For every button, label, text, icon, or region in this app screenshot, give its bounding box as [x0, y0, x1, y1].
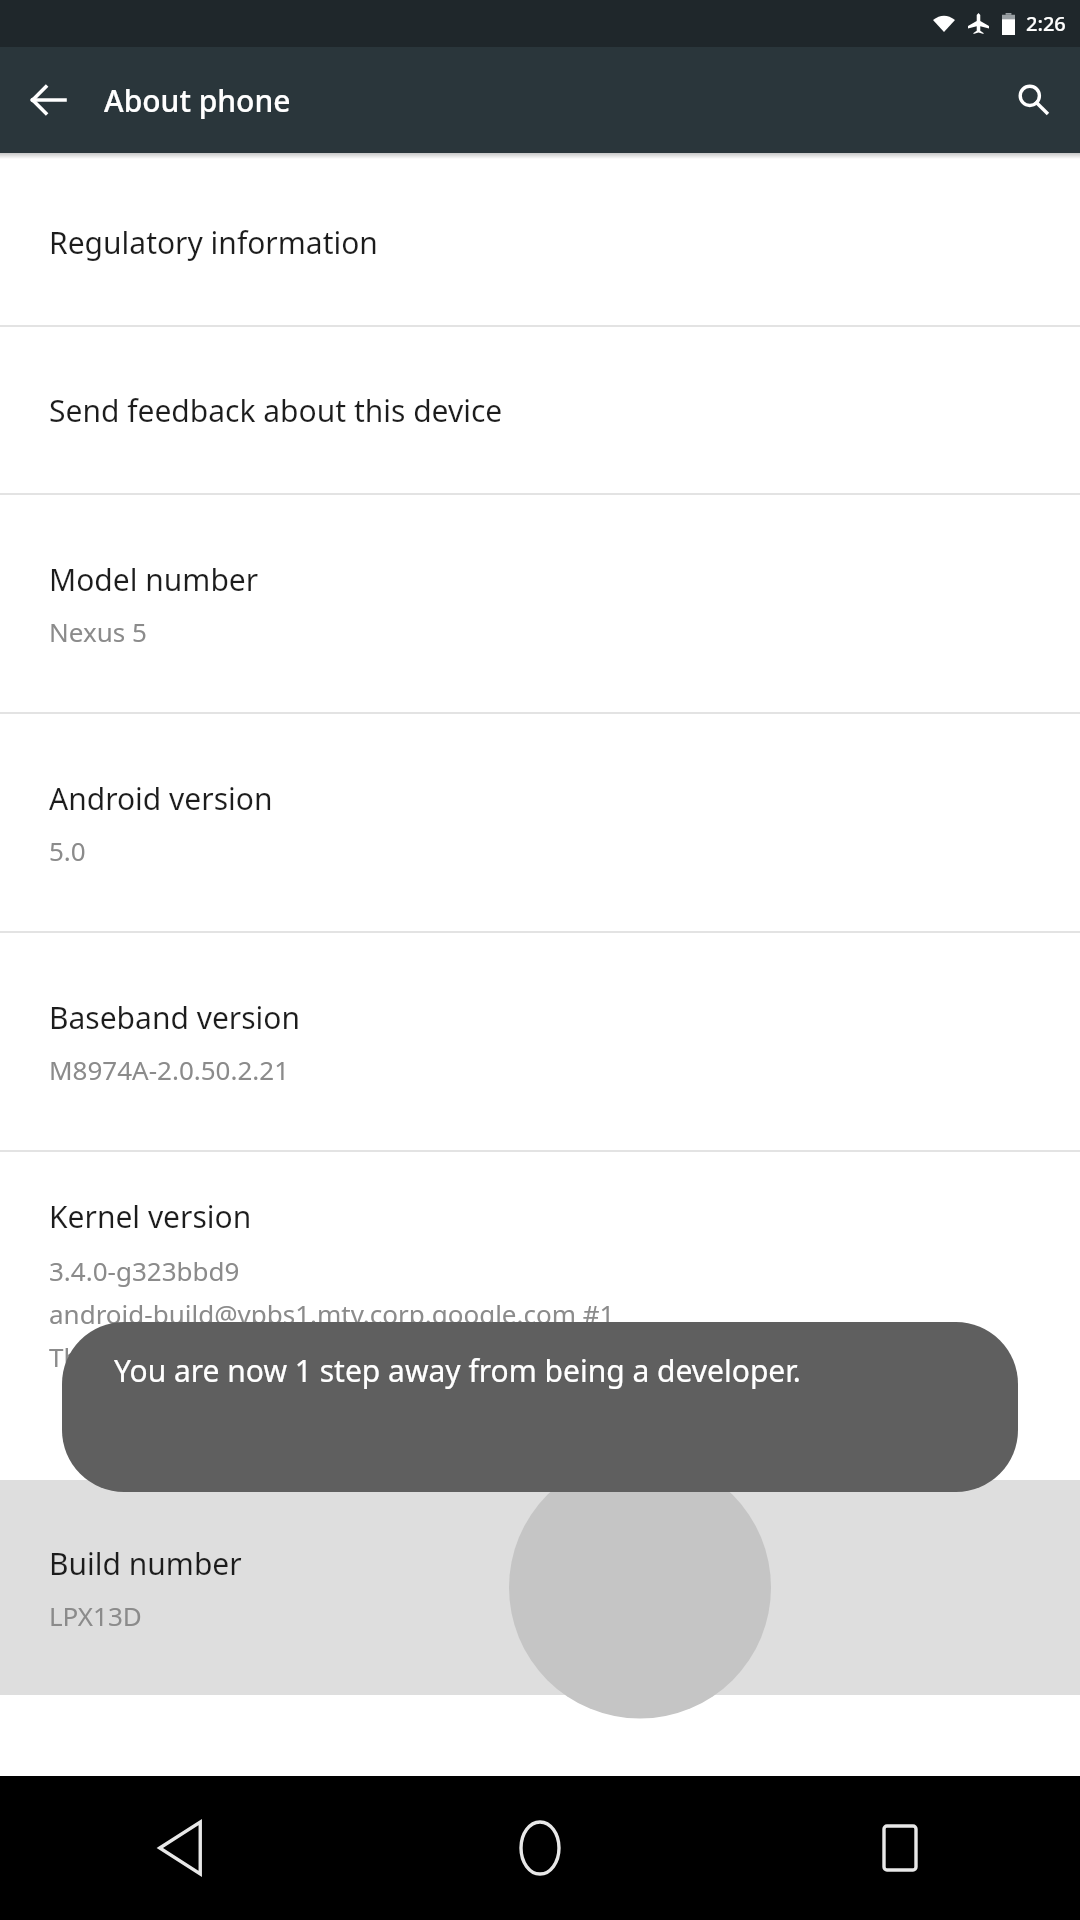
staticText: About phone [104, 80, 291, 121]
staticText: LPX13D [49, 1598, 142, 1633]
button[interactable]: Back [0, 1776, 360, 1920]
staticText: Regulatory information [49, 222, 378, 263]
staticText: Build number [49, 1543, 242, 1584]
staticText: android-build@vpbs1.mtv.corp.google.com … [49, 1296, 615, 1331]
button[interactable]: Kernel version [0, 1152, 1080, 1480]
staticText: Model number [49, 559, 259, 600]
button[interactable]: Build number [0, 1480, 1080, 1695]
button[interactable]: Model number [0, 495, 1080, 712]
staticText: Thu Oct 9 03:37:15 UTC 2014 [49, 1339, 399, 1374]
staticText: M8974A-2.0.50.2.21 [49, 1052, 290, 1087]
button[interactable]: Recents [720, 1776, 1080, 1920]
staticText: 3.4.0-g323bbd9 [49, 1253, 240, 1288]
staticText: You are now 1 step away from being a dev… [114, 1350, 801, 1391]
staticText: Android version [49, 778, 273, 819]
button[interactable]: Back [17, 69, 79, 131]
button[interactable]: Send feedback about this device [0, 327, 1080, 493]
button[interactable]: Android version [0, 714, 1080, 931]
staticText: Kernel version [49, 1196, 252, 1237]
staticText: Nexus 5 [49, 614, 147, 649]
button[interactable]: Baseband version [0, 933, 1080, 1150]
staticText: 5.0 [49, 833, 86, 868]
button[interactable]: Search [1002, 69, 1064, 131]
button[interactable]: Regulatory information [0, 159, 1080, 325]
staticText: Send feedback about this device [49, 390, 503, 431]
staticText: Baseband version [49, 997, 301, 1038]
button[interactable]: Home [360, 1776, 720, 1920]
staticText: 2:26 [1026, 10, 1066, 37]
